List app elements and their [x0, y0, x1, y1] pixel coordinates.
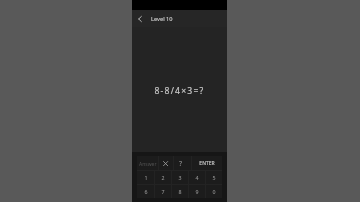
button[interactable]: 1 [137, 171, 154, 184]
staticText: 6 [144, 188, 148, 195]
staticText: 8-8/4×3=? [132, 85, 227, 97]
staticText: 8 [178, 188, 182, 195]
staticText: Answer [139, 161, 157, 168]
button[interactable]: 2 [155, 171, 171, 184]
button[interactable]: ENTER [192, 156, 222, 170]
staticText: 3 [178, 174, 182, 181]
staticText: 0 [212, 188, 216, 195]
staticText: 9 [195, 188, 199, 195]
staticText: Level 10 [151, 15, 173, 23]
button[interactable]: 7 [155, 185, 171, 198]
button[interactable]: 0 [206, 185, 222, 198]
button[interactable]: 3 [172, 171, 188, 184]
staticText: 2 [161, 174, 165, 181]
button[interactable]: Answer [137, 156, 158, 170]
button[interactable]: Clear [159, 156, 173, 170]
button[interactable]: Back [132, 10, 148, 27]
staticText: 1 [144, 174, 148, 181]
staticText: 5 [212, 174, 216, 181]
staticText: ? [179, 159, 183, 169]
staticText: 7 [161, 188, 165, 195]
button[interactable]: Hint [174, 156, 191, 170]
button[interactable]: 9 [189, 185, 205, 198]
button[interactable]: 4 [189, 171, 205, 184]
button[interactable]: 6 [137, 185, 154, 198]
button[interactable]: 5 [206, 171, 222, 184]
staticText: ENTER [199, 160, 215, 167]
button[interactable]: 8 [172, 185, 188, 198]
staticText: 4 [195, 174, 199, 181]
